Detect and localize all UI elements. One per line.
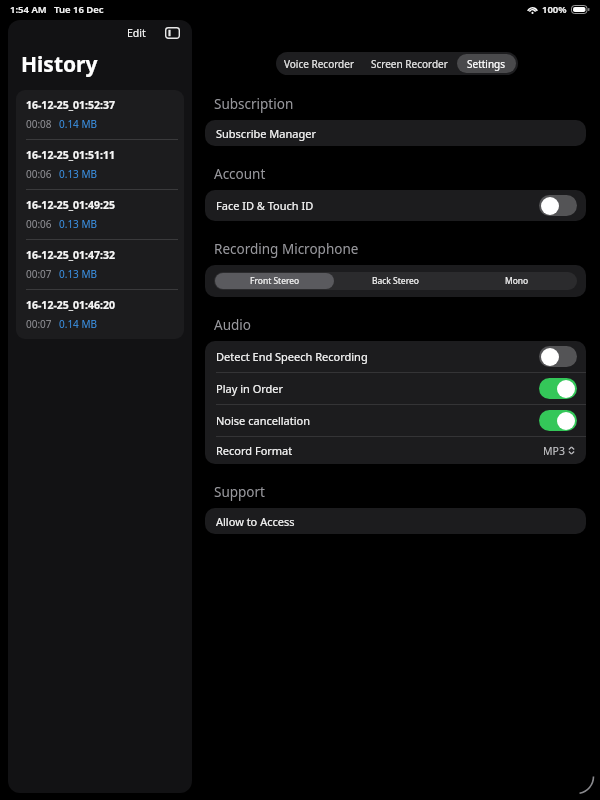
staticText: Account — [214, 165, 266, 183]
button[interactable]: Detect End Speech Recording — [205, 341, 586, 372]
button[interactable]: Off — [539, 346, 577, 367]
staticText: 00:07 — [26, 267, 52, 281]
staticText: Support — [214, 483, 265, 501]
staticText: 1:54 AM — [10, 3, 47, 16]
staticText: 100% — [542, 3, 567, 16]
staticText: 00:06 — [26, 217, 52, 231]
button[interactable]: Mono — [457, 273, 576, 289]
staticText: 00:07 — [26, 317, 52, 331]
staticText: 16-12-25_01:47:32 — [26, 248, 116, 262]
button[interactable]: 16-12-25_01:51:11 — [16, 140, 184, 189]
button[interactable]: Front Stereo — [215, 273, 334, 289]
staticText: Back Stereo — [372, 275, 419, 287]
button[interactable]: 16-12-25_01:47:32 — [16, 240, 184, 289]
staticText: Allow to Access — [216, 514, 295, 529]
staticText: Play in Order — [216, 381, 284, 396]
button[interactable]: On — [539, 378, 577, 399]
button[interactable]: 16-12-25_01:52:37 — [16, 90, 184, 139]
staticText: Settings — [467, 57, 506, 71]
staticText: 16-12-25_01:46:20 — [26, 298, 116, 312]
button[interactable]: 16-12-25_01:49:25 — [16, 190, 184, 239]
button[interactable]: On — [539, 410, 577, 431]
staticText: 00:06 — [26, 167, 52, 181]
button[interactable]: Noise cancellation — [205, 405, 586, 436]
staticText: History — [21, 50, 98, 79]
staticText: 16-12-25_01:51:11 — [26, 148, 116, 162]
button[interactable]: Play in Order — [205, 373, 586, 404]
staticText: Voice Recorder — [284, 57, 355, 71]
staticText: MP3 — [543, 444, 565, 458]
staticText: 16-12-25_01:52:37 — [26, 98, 116, 112]
staticText: 0.14 MB — [59, 117, 98, 131]
button[interactable]: Subscribe Manager — [205, 120, 586, 146]
staticText: Recording Microphone — [214, 240, 359, 258]
button[interactable]: Record Format — [205, 437, 586, 464]
staticText: Audio — [214, 316, 251, 334]
button[interactable]: Voice Recorder — [278, 54, 361, 73]
button[interactable]: 16-12-25_01:46:20 — [16, 290, 184, 339]
staticText: Tue 16 Dec — [54, 3, 104, 16]
staticText: 16-12-25_01:49:25 — [26, 198, 116, 212]
button[interactable]: Edit — [123, 24, 150, 42]
staticText: Front Stereo — [250, 275, 300, 287]
staticText: Face ID & Touch ID — [216, 198, 314, 213]
button[interactable]: Toggle sidebar — [162, 24, 183, 42]
staticText: 0.13 MB — [59, 217, 98, 231]
staticText: 0.13 MB — [59, 267, 98, 281]
staticText: Screen Recorder — [371, 57, 448, 71]
staticText: Detect End Speech Recording — [216, 349, 368, 364]
button[interactable]: Off — [539, 195, 577, 216]
button[interactable]: Settings — [457, 54, 516, 73]
staticText: 00:08 — [26, 117, 52, 131]
button[interactable]: Face ID & Touch ID — [205, 190, 586, 221]
staticText: Subscription — [214, 95, 294, 113]
button[interactable]: Screen Recorder — [365, 54, 453, 73]
staticText: Noise cancellation — [216, 413, 311, 428]
staticText: Mono — [505, 275, 529, 287]
staticText: 0.13 MB — [59, 167, 98, 181]
staticText: Edit — [127, 26, 146, 40]
staticText: Subscribe Manager — [216, 126, 316, 141]
button[interactable]: Allow to Access — [205, 508, 586, 534]
button[interactable]: Back Stereo — [336, 273, 455, 289]
staticText: Record Format — [216, 443, 293, 458]
staticText: 0.14 MB — [59, 317, 98, 331]
